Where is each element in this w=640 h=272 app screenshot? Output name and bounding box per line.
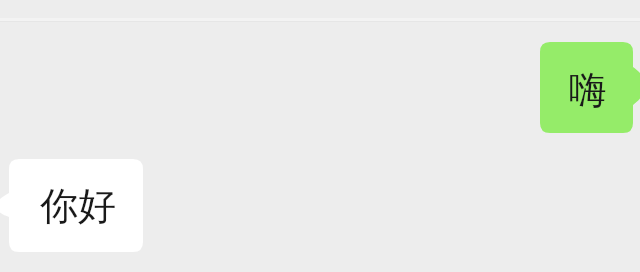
button[interactable]: Received message: 你好: [1, 159, 143, 252]
staticText: 你好: [40, 182, 116, 230]
button[interactable]: Sent message: 嗨: [540, 42, 640, 133]
staticText: 嗨: [569, 66, 607, 114]
